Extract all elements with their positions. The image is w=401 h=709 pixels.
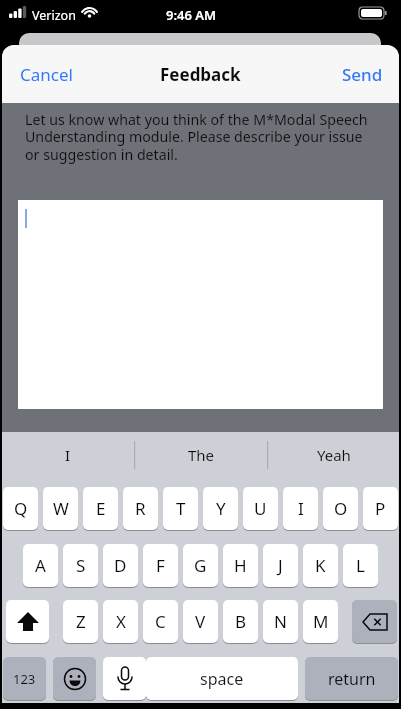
button[interactable]: G xyxy=(183,544,218,587)
staticText: G xyxy=(194,554,207,577)
button[interactable] xyxy=(53,657,96,700)
staticText: I xyxy=(65,445,71,465)
staticText: V xyxy=(195,610,206,633)
button[interactable]: E xyxy=(83,487,118,530)
staticText: H xyxy=(234,554,247,577)
staticText: The xyxy=(188,445,215,465)
staticText: J xyxy=(278,554,283,577)
staticText: D xyxy=(114,554,127,577)
button[interactable] xyxy=(352,600,397,643)
staticText: N xyxy=(274,610,287,633)
button[interactable]: W xyxy=(43,487,78,530)
button[interactable] xyxy=(103,657,146,700)
staticText: Yeah xyxy=(317,445,351,465)
staticText: B xyxy=(235,610,247,633)
staticText: E xyxy=(96,497,106,520)
staticText: W xyxy=(53,497,69,520)
staticText: U xyxy=(254,497,267,520)
button[interactable]: D xyxy=(103,544,138,587)
staticText: Verizon xyxy=(32,7,76,24)
staticText: C xyxy=(155,610,166,633)
button[interactable]: Cancel xyxy=(12,53,82,95)
staticText: X xyxy=(116,610,126,633)
staticText: R xyxy=(135,497,146,520)
staticText: L xyxy=(356,554,365,577)
button[interactable]: C xyxy=(143,600,178,643)
button[interactable]: space xyxy=(146,657,298,700)
button[interactable]: O xyxy=(323,487,358,530)
button[interactable]: I xyxy=(283,487,318,530)
button[interactable]: A xyxy=(23,544,58,587)
button[interactable]: V xyxy=(183,600,218,643)
button[interactable]: I xyxy=(2,432,134,477)
button[interactable]: Yeah xyxy=(268,432,399,477)
button[interactable]: The xyxy=(135,432,267,477)
staticText: space xyxy=(200,668,244,690)
staticText: I xyxy=(298,497,304,520)
staticText: A xyxy=(35,554,46,577)
staticText: 123 xyxy=(13,670,36,688)
staticText: T xyxy=(176,497,186,520)
button[interactable]: return xyxy=(305,657,398,700)
button[interactable]: M xyxy=(303,600,338,643)
button[interactable]: Q xyxy=(3,487,38,530)
staticText: M xyxy=(313,610,329,633)
button[interactable]: N xyxy=(263,600,298,643)
button[interactable]: Z xyxy=(63,600,98,643)
staticText: S xyxy=(76,554,86,577)
staticText: 9:46 AM xyxy=(166,6,217,24)
button[interactable]: T xyxy=(163,487,198,530)
button[interactable]: Y xyxy=(203,487,238,530)
staticText: Q xyxy=(14,497,28,520)
staticText: return xyxy=(328,668,376,690)
staticText: Y xyxy=(216,497,226,520)
button[interactable]: R xyxy=(123,487,158,530)
staticText: Cancel xyxy=(20,63,73,86)
staticText: Feedback xyxy=(160,63,241,86)
button[interactable]: K xyxy=(303,544,338,587)
staticText: Let us know what you think of the M*Moda… xyxy=(25,110,368,129)
staticText: O xyxy=(334,497,348,520)
button[interactable]: J xyxy=(263,544,298,587)
button[interactable]: B xyxy=(223,600,258,643)
staticText: Understanding module. Please describe yo… xyxy=(25,127,363,146)
button[interactable] xyxy=(6,600,49,643)
button[interactable]: H xyxy=(223,544,258,587)
staticText: Z xyxy=(76,610,86,633)
staticText: P xyxy=(375,497,386,520)
button[interactable]: L xyxy=(343,544,378,587)
staticText: Send xyxy=(342,63,383,86)
button[interactable]: Send xyxy=(327,53,393,95)
staticText: F xyxy=(156,554,165,577)
button[interactable]: X xyxy=(103,600,138,643)
staticText: or suggestion in detail. xyxy=(25,145,178,164)
button[interactable]: U xyxy=(243,487,278,530)
button[interactable]: 123 xyxy=(3,657,46,700)
button[interactable]: S xyxy=(63,544,98,587)
staticText: K xyxy=(315,554,326,577)
button[interactable]: F xyxy=(143,544,178,587)
button[interactable]: P xyxy=(363,487,398,530)
